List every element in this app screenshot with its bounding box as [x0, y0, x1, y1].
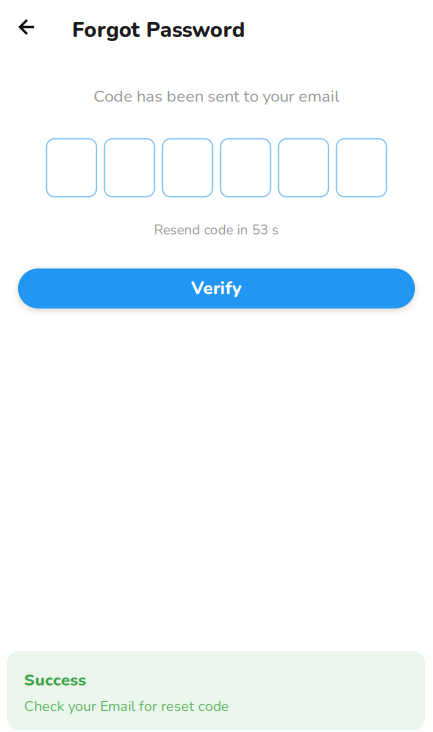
staticText: Forgot Password: [72, 15, 245, 45]
button[interactable]: Code digit 6: [336, 139, 386, 197]
button[interactable]: Code digit 5: [278, 139, 328, 197]
staticText: Verify: [191, 276, 242, 301]
staticText: Resend code in 53 s: [154, 221, 279, 239]
staticText: Code has been sent to your email: [93, 85, 339, 108]
button[interactable]: Code digit 4: [220, 139, 270, 197]
staticText: Check your Email for reset code: [24, 696, 229, 716]
staticText: Success: [24, 669, 86, 691]
button[interactable]: Code digit 1: [46, 139, 96, 197]
button[interactable]: Back: [9, 9, 45, 45]
button[interactable]: Verify: [18, 268, 415, 308]
button[interactable]: Code digit 3: [162, 139, 212, 197]
button[interactable]: Code digit 2: [104, 139, 154, 197]
